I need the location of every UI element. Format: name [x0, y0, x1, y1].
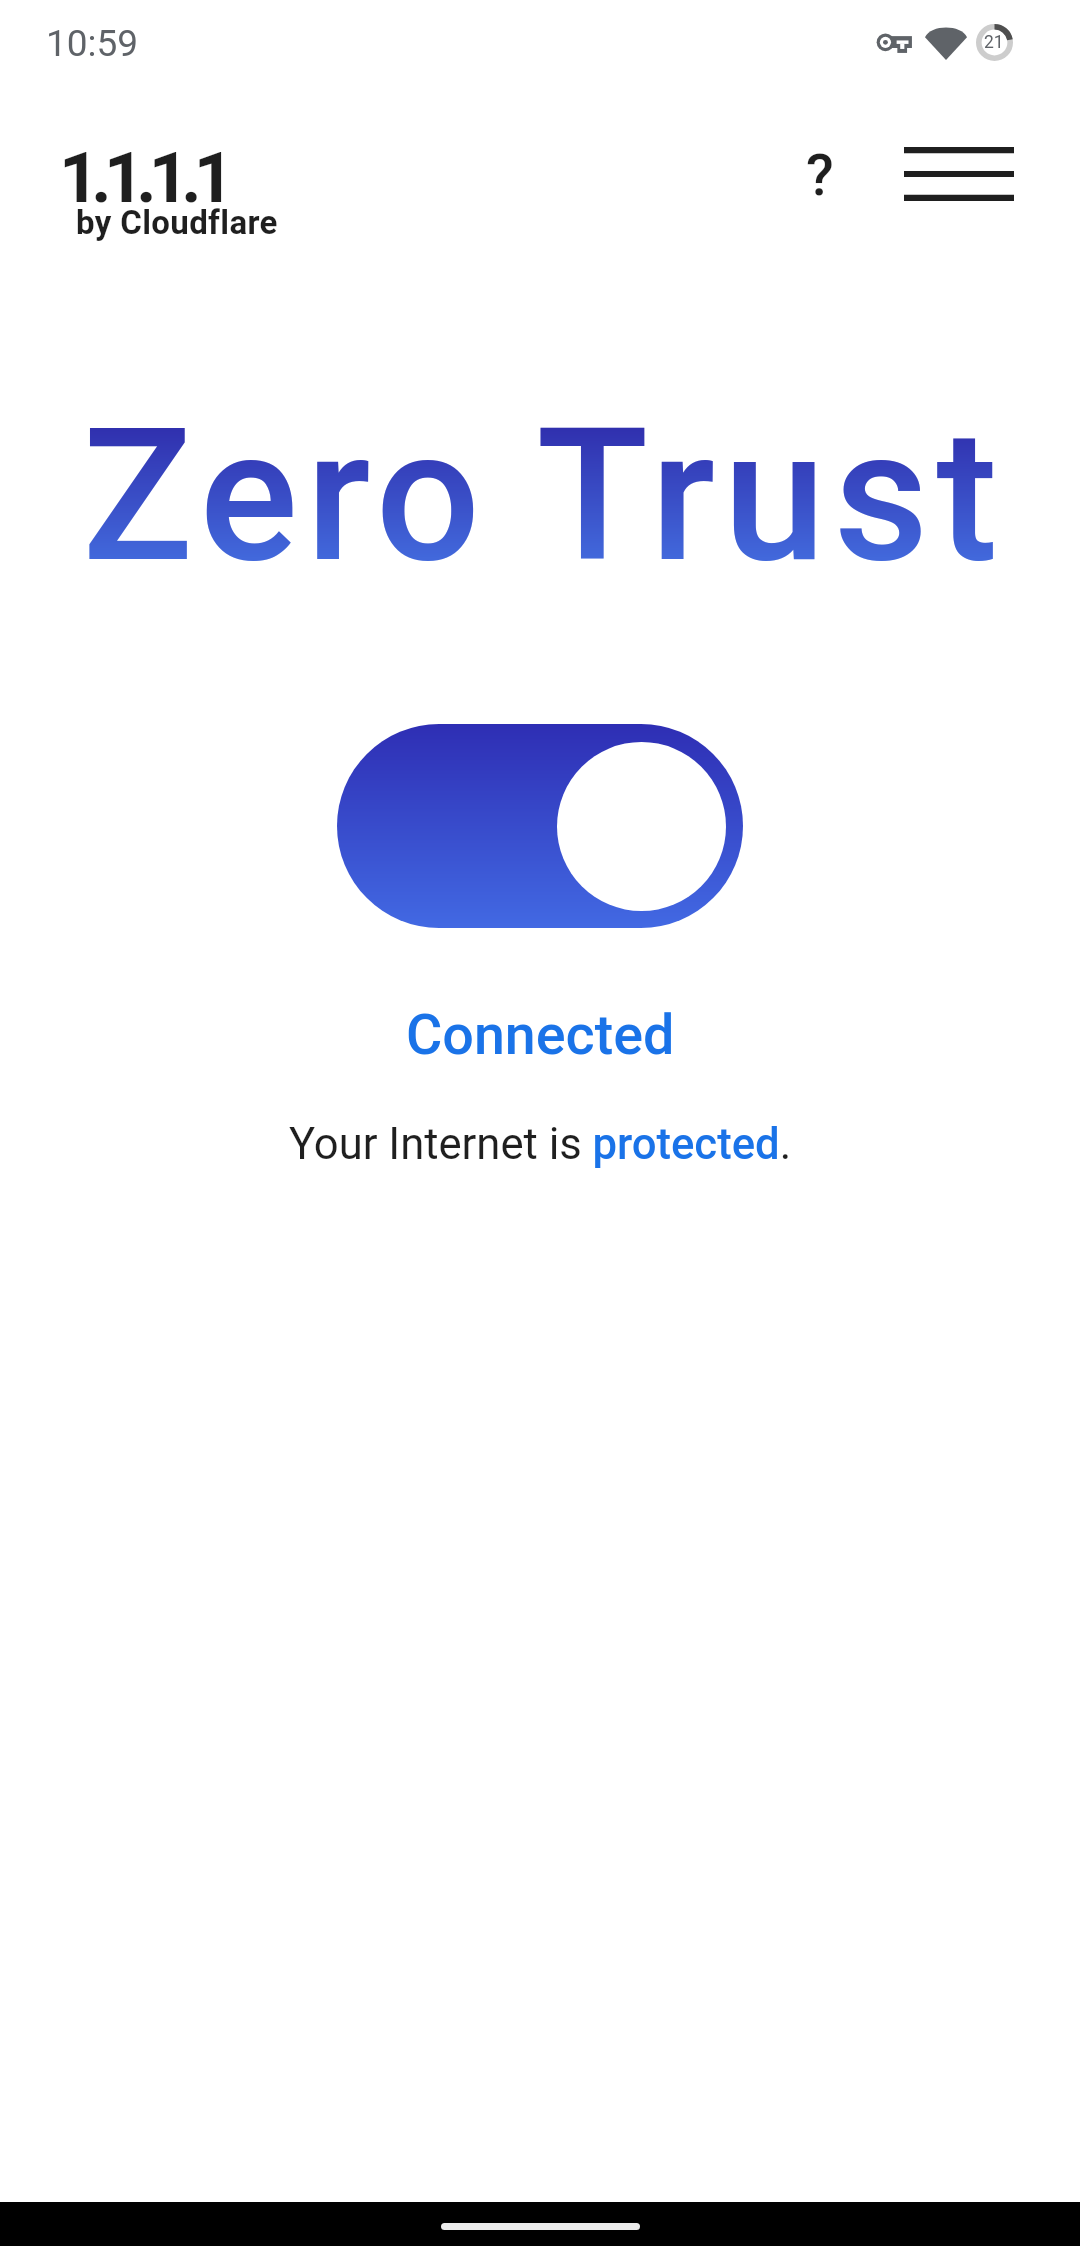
staticText: Zero Trust: [82, 388, 1006, 604]
staticText: Connected: [406, 1002, 675, 1067]
staticText: 21: [984, 32, 1004, 53]
staticText: 1.1.1.1: [59, 137, 227, 219]
button[interactable]: Menu: [894, 109, 1024, 239]
button[interactable]: Disconnect: [337, 724, 743, 928]
staticText: 10:59: [46, 22, 139, 65]
button[interactable]: Help: [760, 116, 880, 236]
staticText: ?: [806, 142, 834, 209]
staticText: by Cloudflare: [76, 203, 278, 242]
staticText: Your Internet is protected.: [289, 1119, 792, 1170]
